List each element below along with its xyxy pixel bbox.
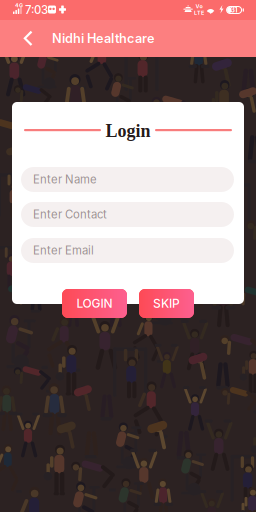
staticText: SKIP <box>153 296 180 311</box>
staticText: Enter Email <box>33 244 94 257</box>
staticText: LOGIN <box>76 296 112 311</box>
staticText: 7:03 <box>25 3 48 17</box>
staticText: Nidhi Healthcare <box>52 31 154 46</box>
staticText: Enter Contact <box>33 208 107 221</box>
staticText: LTE <box>194 9 204 16</box>
staticText: 31 <box>231 6 238 14</box>
button[interactable]: Back <box>14 20 42 57</box>
staticText: Vo <box>195 3 202 9</box>
button[interactable]: SKIP <box>139 289 194 318</box>
button[interactable]: LOGIN <box>62 289 127 318</box>
staticText: 4G <box>15 2 23 8</box>
staticText: Enter Name <box>33 173 97 186</box>
staticText: Login <box>105 121 150 141</box>
